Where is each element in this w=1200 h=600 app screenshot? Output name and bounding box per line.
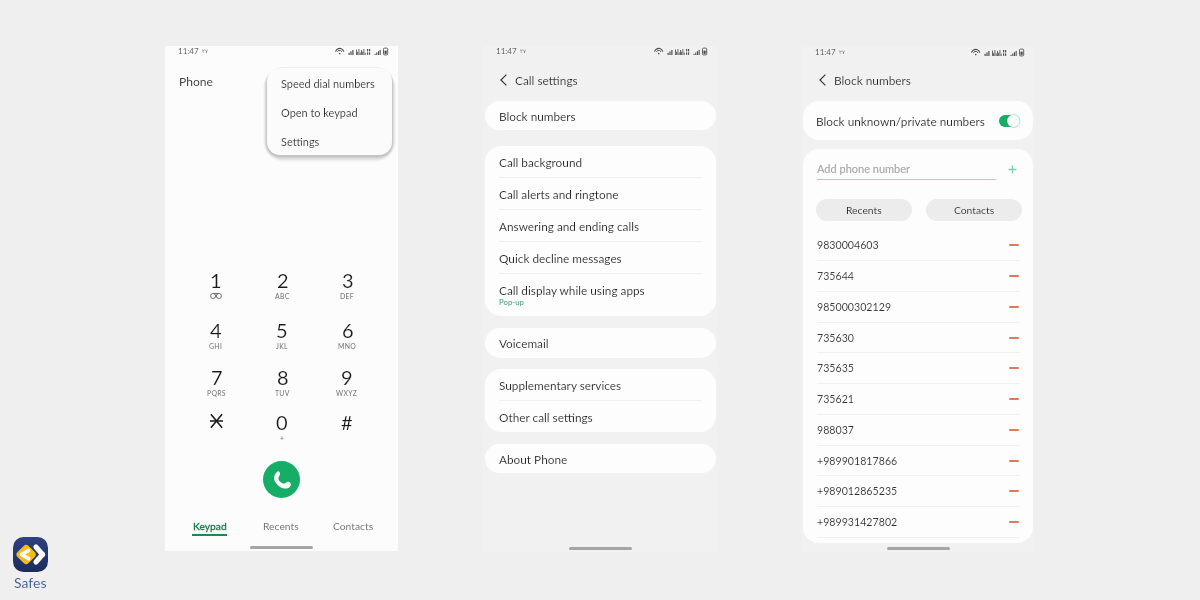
button[interactable]: 7 [192,365,240,409]
button[interactable]: Back [816,72,829,88]
staticText: 988037 [817,423,855,436]
button[interactable]: Recents [816,199,912,221]
button[interactable]: Voicemail [485,328,716,358]
staticText: GHI [209,342,223,350]
staticText: 11:47 [815,47,836,57]
button[interactable]: 8 [258,365,306,409]
button[interactable]: Settings [267,127,392,155]
button[interactable]: Block unknown/private numbers [803,101,1033,140]
button[interactable]: +989012865235 [803,475,1033,506]
button[interactable]: Unblock [1007,515,1021,529]
button[interactable]: 9 [323,365,371,409]
staticText: Pop-up [499,297,524,306]
button[interactable]: 735630 [803,322,1033,353]
staticText: MNO [338,342,357,350]
button[interactable]: +989931427802 [803,506,1033,537]
button[interactable]: Unblock [1007,454,1021,468]
button[interactable]: 988037 [803,414,1033,445]
button[interactable] [192,410,240,454]
staticText: 985000302129 [817,300,892,313]
staticText: Safes [14,574,47,591]
button[interactable]: Call background [485,146,716,177]
staticText: 735630 [817,331,855,344]
staticText: PQRS [207,389,226,397]
staticText: ۲۷ [839,49,845,55]
button[interactable]: Unblock [1007,361,1021,375]
button[interactable]: Contacts [926,199,1022,221]
button[interactable]: Open to keypad [267,98,392,127]
button[interactable]: 985000302129 [803,291,1033,322]
staticText: Speed dial numbers [281,77,375,90]
staticText: 1 [210,268,222,289]
staticText: 3 [342,268,354,289]
staticText: Keypad [193,520,227,532]
button[interactable]: Call display while using apps [485,274,716,316]
staticText: +989901817866 [817,454,898,467]
button[interactable]: 2 [258,268,306,312]
button[interactable]: 5 [258,318,306,362]
button[interactable]: # [323,410,371,454]
staticText: Contacts [333,520,374,532]
staticText: Quick decline messages [499,251,622,265]
staticText: Call background [499,155,583,169]
staticText: 9 [341,365,353,386]
button[interactable]: Answering and ending calls [485,210,716,241]
button[interactable]: Unblock [1007,484,1021,498]
button[interactable]: Unblock [1007,269,1021,283]
staticText: 735621 [817,392,855,405]
button[interactable]: 4 [192,318,240,362]
staticText: Voicemail [499,336,549,350]
staticText: Answering and ending calls [499,219,640,233]
button[interactable]: Call alerts and ringtone [485,178,716,209]
staticText: Call settings [515,73,578,87]
button[interactable]: Call [263,461,300,498]
staticText: Settings [281,135,320,148]
button[interactable]: 1 [192,268,240,312]
button[interactable]: Unblock [1007,423,1021,437]
button[interactable]: Block numbers [485,101,716,130]
staticText: 0 [276,410,288,431]
staticText: TUV [275,389,290,397]
staticText: 7 [211,365,223,386]
staticText: + [280,434,285,442]
button[interactable]: Speed dial numbers [267,69,392,98]
button[interactable]: 0 [258,410,306,454]
button[interactable]: Block unknown numbers toggle [999,114,1020,128]
staticText: DEF [340,292,355,300]
staticText: 4 [210,318,222,339]
staticText: Recents [263,520,299,532]
button[interactable]: 735644 [803,260,1033,291]
button[interactable]: Quick decline messages [485,242,716,273]
button[interactable]: Unblock [1007,300,1021,314]
button[interactable]: 6 [323,318,371,362]
staticText: 735635 [817,361,855,374]
button[interactable]: Other call settings [485,401,716,432]
staticText: Recents [846,204,882,216]
staticText: 9830004603 [817,238,879,251]
button[interactable]: Unblock [1007,238,1021,252]
button[interactable]: Recents [245,520,317,540]
staticText: 11:47 [178,46,199,56]
button[interactable]: 3 [323,268,371,312]
button[interactable]: 735635 [803,352,1033,383]
staticText: Call display while using apps [499,283,645,297]
staticText: 5 [276,318,288,339]
button[interactable]: Unblock [1007,331,1021,345]
button[interactable]: Back [497,72,510,88]
button[interactable]: Keypad [174,520,245,540]
staticText: Supplementary services [499,378,622,392]
button[interactable]: Supplementary services [485,369,716,400]
staticText: 6 [342,318,354,339]
button[interactable]: +989901817866 [803,445,1033,476]
staticText: Other call settings [499,410,593,424]
button[interactable]: Contacts [317,520,389,540]
staticText: Add phone number [817,162,911,175]
staticText: # [341,410,353,431]
button[interactable]: Add number [1005,162,1020,177]
staticText: +989931427802 [817,515,898,528]
button[interactable]: Unblock [1007,392,1021,406]
button[interactable]: 735621 [803,383,1033,414]
staticText: Call alerts and ringtone [499,187,619,201]
button[interactable]: About Phone [485,444,716,473]
button[interactable]: 9830004603 [803,229,1033,260]
